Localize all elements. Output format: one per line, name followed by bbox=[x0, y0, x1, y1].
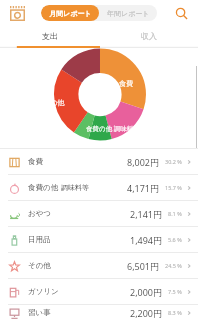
staticText: 調味料等 bbox=[61, 183, 89, 192]
staticText: 月間レポート bbox=[49, 9, 92, 18]
button[interactable]: ガソリン bbox=[0, 279, 198, 304]
staticText: 2,200円 bbox=[130, 307, 163, 319]
staticText: 8.1 % bbox=[168, 210, 182, 217]
button[interactable]: 収入 bbox=[99, 26, 198, 46]
staticText: 日用品 bbox=[28, 235, 51, 244]
staticText: その他 bbox=[43, 98, 65, 107]
staticText: おやつ bbox=[28, 209, 52, 218]
button[interactable]: 月間レポート bbox=[41, 5, 99, 21]
button[interactable]: その他 bbox=[0, 253, 198, 278]
staticText: 食費の他 bbox=[28, 183, 59, 192]
staticText: 8.3 % bbox=[168, 309, 182, 316]
staticText: 8,002円 bbox=[127, 156, 160, 168]
staticText: 習い事 bbox=[28, 308, 51, 317]
staticText: その他 bbox=[28, 261, 51, 270]
staticText: 15.7 % bbox=[165, 184, 182, 191]
button[interactable]: 日用品 bbox=[0, 227, 198, 252]
staticText: ガソリン bbox=[28, 287, 59, 296]
staticText: 食費の他 調味料等 bbox=[86, 124, 140, 133]
staticText: 7.5 % bbox=[168, 288, 182, 295]
button[interactable]: Search bbox=[170, 2, 192, 24]
staticText: 1,494円 bbox=[130, 234, 163, 246]
staticText: 食費 bbox=[119, 79, 133, 88]
staticText: 食費 bbox=[28, 157, 43, 166]
staticText: 年間レポート bbox=[107, 9, 150, 18]
button[interactable]: おやつ bbox=[0, 201, 198, 226]
staticText: 5.6 % bbox=[168, 236, 182, 243]
button[interactable]: 食費 bbox=[0, 149, 198, 174]
staticText: 4,171円 bbox=[127, 182, 160, 194]
staticText: 支出 bbox=[42, 31, 58, 41]
staticText: 24.5 % bbox=[165, 262, 182, 269]
staticText: 30.2 % bbox=[165, 158, 182, 165]
button[interactable]: 習い事 bbox=[0, 305, 198, 320]
button[interactable]: Receipt camera bbox=[6, 2, 28, 24]
staticText: 収入 bbox=[141, 31, 157, 41]
staticText: 2,000円 bbox=[130, 286, 163, 298]
button[interactable]: 支出 bbox=[0, 26, 99, 46]
button[interactable]: 食費の他 bbox=[0, 175, 198, 200]
staticText: 6,501円 bbox=[127, 260, 160, 272]
button[interactable]: 年間レポート bbox=[99, 5, 157, 21]
staticText: 2,141円 bbox=[130, 208, 163, 220]
